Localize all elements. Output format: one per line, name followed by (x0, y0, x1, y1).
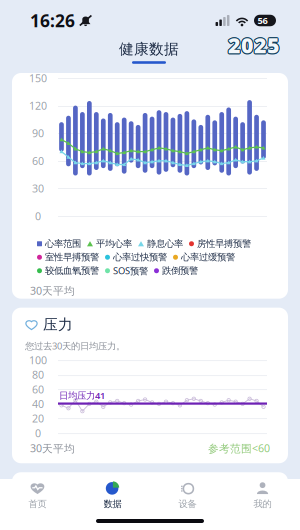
staticText: 2025 (227, 32, 279, 60)
staticText: 2025 (229, 31, 281, 59)
button[interactable]: 首页 (0, 479, 75, 530)
staticText: 80 (32, 368, 44, 382)
staticText: 房性早搏预警 (197, 238, 251, 249)
staticText: 2025 (228, 32, 280, 60)
staticText: 60 (32, 382, 44, 396)
button[interactable]: 健康数据 (119, 40, 179, 64)
staticText: 平均心率 (96, 238, 132, 249)
staticText: 心率过缓预警 (181, 251, 235, 263)
staticText: 健康数据 (119, 40, 179, 58)
staticText: 2025 (228, 30, 280, 58)
staticText: 30天平均 (30, 441, 75, 455)
staticText: 60 (32, 154, 44, 168)
staticText: 150 (29, 71, 47, 85)
staticText: SOS预警 (113, 264, 148, 277)
staticText: 2025 (227, 31, 279, 59)
staticText: 2025 (229, 32, 281, 60)
staticText: 2025 (227, 30, 279, 58)
staticText: 压力 (43, 316, 73, 334)
staticText: 睡眠 (41, 480, 71, 498)
staticText: 首页 (28, 498, 46, 510)
staticText: 设备 (178, 498, 196, 510)
staticText: 心率过快预警 (113, 251, 167, 263)
staticText: 2025 (229, 30, 281, 58)
staticText: 16:26 (30, 9, 75, 32)
staticText: 您过去30天的日均压力。 (25, 340, 125, 352)
staticText: 室性早搏预警 (45, 251, 99, 263)
staticText: 日均压力41 (59, 389, 105, 401)
button[interactable]: 我的 (225, 479, 300, 530)
staticText: 较低血氧预警 (45, 265, 99, 276)
staticText: 30 (32, 181, 44, 195)
staticText: 0 (35, 426, 41, 440)
button[interactable]: 2025 (228, 36, 280, 54)
staticText: 静息心率 (147, 238, 183, 249)
staticText: 56 (257, 14, 267, 27)
button[interactable]: 设备 (150, 479, 225, 530)
button[interactable]: 数据 (75, 479, 150, 530)
staticText: 2025 (228, 31, 280, 59)
staticText: 100 (29, 353, 47, 367)
staticText: 心率范围 (45, 238, 81, 249)
staticText: 我的 (253, 498, 271, 510)
staticText: 40 (32, 397, 44, 411)
staticText: 跌倒预警 (162, 265, 198, 276)
staticText: 120 (29, 98, 47, 113)
staticText: 30天平均 (30, 283, 75, 298)
staticText: 20 (32, 411, 44, 426)
staticText: 数据 (103, 498, 121, 510)
staticText: 90 (32, 126, 44, 140)
staticText: 参考范围<60 (208, 441, 270, 455)
staticText: 0 (35, 209, 41, 223)
